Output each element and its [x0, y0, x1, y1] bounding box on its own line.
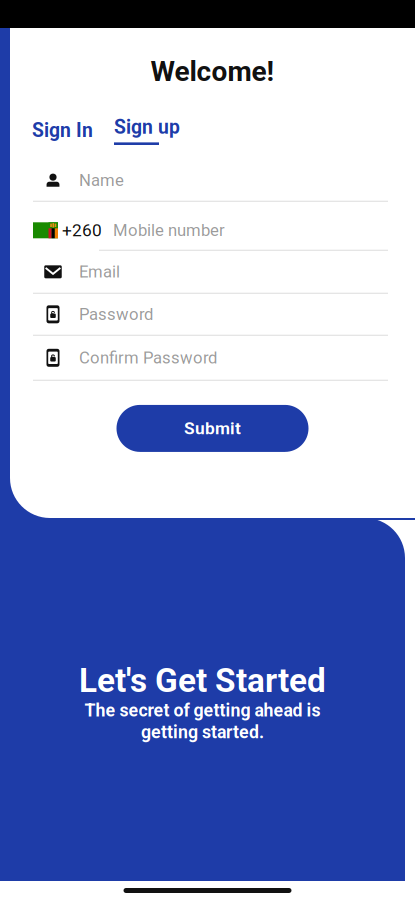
staticText: getting started.: [141, 722, 264, 743]
staticText: Welcome!: [150, 55, 274, 88]
staticText: Mobile number: [113, 220, 225, 240]
button[interactable]: Password: [33, 294, 388, 336]
staticText: +260: [62, 220, 102, 240]
button[interactable]: Sign up: [114, 116, 180, 145]
button[interactable]: Submit: [116, 405, 308, 452]
staticText: Sign up: [114, 116, 180, 138]
button[interactable]: +260: [33, 202, 388, 251]
button[interactable]: Email: [33, 251, 388, 294]
button[interactable]: Sign In: [32, 119, 93, 142]
staticText: Let's Get Started: [79, 661, 326, 700]
staticText: Name: [79, 170, 124, 190]
button[interactable]: Confirm Password: [33, 336, 388, 381]
staticText: Sign In: [32, 119, 93, 142]
staticText: Submit: [184, 418, 241, 439]
staticText: The secret of getting ahead is: [84, 700, 320, 721]
button[interactable]: Name: [33, 160, 388, 202]
staticText: Email: [79, 262, 120, 281]
staticText: Password: [79, 304, 153, 324]
staticText: Confirm Password: [79, 348, 217, 367]
